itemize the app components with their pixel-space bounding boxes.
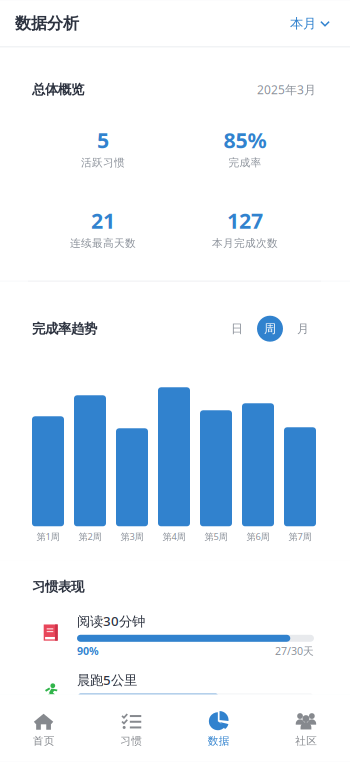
- staticText: 18/30天: [275, 703, 314, 717]
- staticText: 本月完成次数: [212, 237, 278, 250]
- staticText: 90%: [77, 644, 99, 658]
- button[interactable]: 社区: [262, 694, 350, 761]
- staticText: 第6周: [246, 530, 269, 543]
- staticText: 晨跑5公里: [77, 671, 137, 689]
- button[interactable]: 数据: [175, 694, 262, 761]
- button[interactable]: 首页: [0, 694, 87, 761]
- staticText: 5: [97, 126, 109, 154]
- staticText: 第1周: [36, 530, 59, 543]
- staticText: 日: [231, 321, 243, 336]
- button[interactable]: 本月: [290, 7, 330, 40]
- staticText: 月: [297, 321, 309, 336]
- staticText: 数据分析: [15, 14, 79, 33]
- staticText: 周: [264, 321, 276, 336]
- staticText: 本月: [290, 15, 316, 32]
- staticText: 总体概览: [32, 81, 84, 98]
- staticText: 完成率趋势: [32, 320, 97, 337]
- staticText: 阅读30分钟: [77, 612, 145, 630]
- button[interactable]: 周: [257, 316, 283, 342]
- staticText: 2025年3月: [257, 82, 316, 98]
- staticText: 85%: [223, 126, 266, 154]
- staticText: 习惯: [120, 734, 142, 747]
- staticText: 第7周: [288, 530, 311, 543]
- button[interactable]: 月: [290, 316, 316, 342]
- staticText: 127: [227, 206, 263, 235]
- staticText: 首页: [33, 734, 55, 747]
- button[interactable]: 日: [224, 316, 250, 342]
- staticText: 数据: [208, 734, 230, 747]
- staticText: 第4周: [162, 530, 185, 543]
- staticText: 第3周: [120, 530, 143, 543]
- staticText: 第5周: [204, 530, 227, 543]
- staticText: 第2周: [78, 530, 101, 543]
- staticText: 21: [91, 206, 115, 235]
- button[interactable]: 习惯: [87, 694, 175, 761]
- staticText: 27/30天: [275, 644, 314, 658]
- staticText: 连续最高天数: [70, 237, 136, 250]
- staticText: 习惯表现: [32, 579, 84, 595]
- staticText: 完成率: [228, 156, 261, 169]
- staticText: 活跃习惯: [81, 156, 125, 169]
- staticText: 社区: [295, 734, 317, 747]
